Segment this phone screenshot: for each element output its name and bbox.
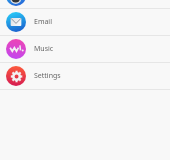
staticText: Settings <box>34 71 61 81</box>
staticText: Email <box>34 17 52 27</box>
button[interactable]: Email <box>0 9 170 35</box>
staticText: Music <box>34 44 54 54</box>
button[interactable]: Settings <box>0 63 170 89</box>
button[interactable]: Music <box>0 36 170 62</box>
button[interactable] <box>0 0 170 8</box>
